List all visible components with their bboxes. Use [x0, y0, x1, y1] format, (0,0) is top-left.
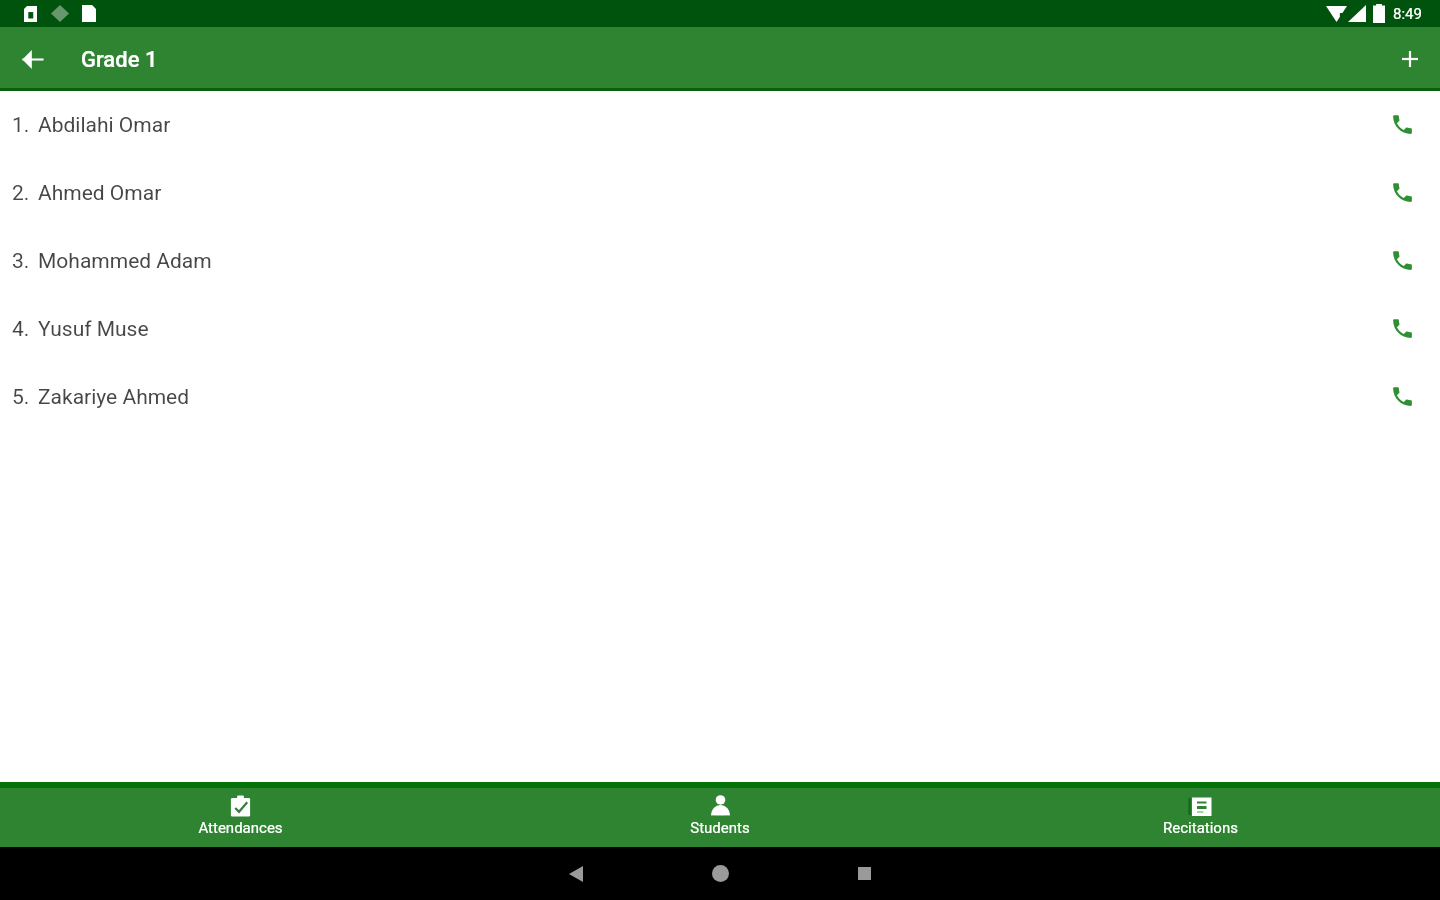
button[interactable]: Call Zakariye Ahmed: [1378, 373, 1426, 421]
staticText: 4.: [12, 317, 30, 342]
button[interactable]: Add: [1386, 35, 1434, 83]
button[interactable]: Students: [480, 788, 960, 847]
button[interactable]: Call Yusuf Muse: [1378, 305, 1426, 353]
staticText: Ahmed Omar: [38, 181, 162, 206]
staticText: Mohammed Adam: [38, 249, 212, 274]
staticText: Grade 1: [81, 47, 158, 73]
staticText: 1.: [12, 113, 30, 138]
staticText: Zakariye Ahmed: [38, 385, 190, 410]
staticText: 5.: [12, 385, 30, 410]
button[interactable]: Call Abdilahi Omar: [1378, 101, 1426, 149]
button[interactable]: Back: [8, 35, 56, 83]
button[interactable]: 1.: [0, 91, 1440, 159]
staticText: Students: [690, 819, 750, 837]
staticText: 8:49: [1393, 5, 1422, 23]
button[interactable]: 4.: [0, 295, 1440, 363]
button[interactable]: 5.: [0, 363, 1440, 431]
staticText: Attendances: [198, 819, 283, 837]
button[interactable]: Back: [504, 847, 648, 900]
button[interactable]: Attendances: [0, 788, 480, 847]
button[interactable]: Call Ahmed Omar: [1378, 169, 1426, 217]
staticText: Recitations: [1163, 819, 1238, 837]
button[interactable]: 3.: [0, 227, 1440, 295]
button[interactable]: 2.: [0, 159, 1440, 227]
button[interactable]: Home: [648, 847, 792, 900]
button[interactable]: Recents: [792, 847, 936, 900]
staticText: 2.: [12, 181, 30, 206]
staticText: Abdilahi Omar: [38, 113, 171, 138]
button[interactable]: Call Mohammed Adam: [1378, 237, 1426, 285]
button[interactable]: Recitations: [960, 788, 1440, 847]
staticText: Yusuf Muse: [38, 317, 149, 342]
staticText: 3.: [12, 249, 30, 274]
